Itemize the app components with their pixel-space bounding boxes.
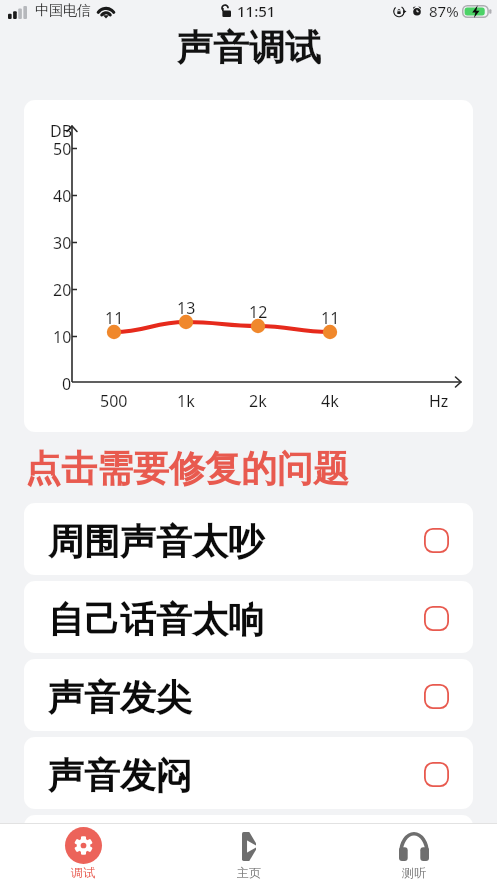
button[interactable]: 自己话音太响: [24, 581, 473, 653]
button[interactable]: 调试: [37, 824, 129, 883]
staticText: 声音调试: [177, 25, 321, 65]
button[interactable]: [24, 815, 473, 883]
staticText: 12: [249, 301, 268, 323]
staticText: 2k: [249, 390, 267, 412]
staticText: 50: [53, 138, 72, 160]
button[interactable]: 声音发闷: [24, 737, 473, 809]
staticText: 4k: [321, 390, 339, 412]
staticText: Hz: [429, 390, 449, 412]
staticText: 11: [105, 307, 124, 329]
button[interactable]: 主页: [203, 824, 295, 883]
staticText: 声音发尖: [48, 675, 192, 720]
staticText: 1k: [177, 390, 195, 412]
staticText: 主页: [237, 865, 261, 880]
staticText: 自己话音太响: [48, 597, 264, 642]
staticText: 40: [53, 185, 72, 207]
staticText: 11:51: [237, 1, 276, 21]
staticText: 调试: [71, 865, 95, 880]
staticText: 10: [53, 326, 72, 348]
staticText: DB: [50, 120, 73, 142]
staticText: 20: [53, 279, 72, 301]
button[interactable]: 周围声音太吵: [24, 503, 473, 575]
button[interactable]: 声音发尖: [24, 659, 473, 731]
staticText: 13: [177, 297, 196, 319]
staticText: 500: [100, 390, 128, 412]
staticText: 声音发闷: [48, 753, 192, 798]
staticText: 点击需要修复的问题: [25, 446, 349, 491]
staticText: 周围声音太吵: [48, 519, 264, 564]
staticText: 中国电信: [35, 2, 91, 20]
staticText: 30: [53, 232, 72, 254]
staticText: 测听: [402, 865, 426, 880]
staticText: 87%: [429, 1, 459, 21]
staticText: 0: [62, 373, 72, 395]
button[interactable]: 测听: [368, 824, 460, 883]
staticText: 11: [321, 307, 340, 329]
